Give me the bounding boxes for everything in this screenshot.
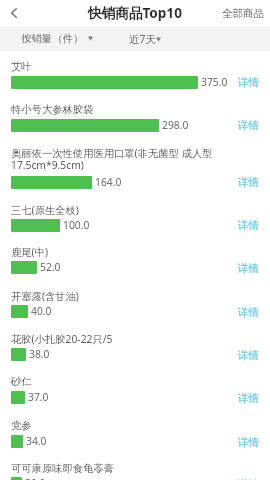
- button[interactable]: Back: [0, 0, 28, 26]
- staticText: 详情: [238, 392, 259, 404]
- staticText: 详情: [238, 349, 259, 361]
- staticText: 三七(原生全枝): [11, 203, 223, 217]
- staticText: 近7天: [129, 32, 156, 46]
- button[interactable]: 详情: [238, 219, 259, 231]
- staticText: 党参: [11, 419, 223, 432]
- button[interactable]: 详情: [238, 119, 259, 131]
- staticText: 详情: [238, 219, 259, 231]
- staticText: 鹿尾(中): [11, 245, 223, 259]
- staticText: 30.0: [25, 476, 46, 480]
- button[interactable]: 详情: [238, 392, 259, 404]
- button[interactable]: 近7天: [129, 32, 161, 46]
- staticText: 298.0: [162, 118, 189, 132]
- button[interactable]: [0, 462, 270, 480]
- staticText: 特小号大参林胶袋: [11, 103, 223, 116]
- staticText: 花胶(小扎胶20-22只/5: [11, 332, 223, 346]
- staticText: 艾叶: [11, 60, 223, 73]
- staticText: 按销量（件）: [21, 32, 84, 45]
- button[interactable]: 详情: [238, 436, 259, 448]
- staticText: 奥丽依一次性使用医用口罩(非无菌型 成人型 17.5cm*9.5cm): [11, 146, 223, 172]
- staticText: 详情: [238, 262, 259, 274]
- button[interactable]: [0, 375, 270, 402]
- staticText: 52.0: [40, 260, 61, 274]
- button[interactable]: 详情: [238, 349, 259, 361]
- staticText: 可可康原味即食龟苓膏: [11, 462, 223, 475]
- staticText: 34.0: [26, 434, 47, 448]
- button[interactable]: [0, 60, 270, 87]
- button[interactable]: [0, 146, 270, 186]
- staticText: 详情: [238, 119, 259, 131]
- button[interactable]: 详情: [238, 176, 259, 188]
- staticText: 详情: [238, 436, 259, 448]
- button[interactable]: 全部商品: [222, 7, 264, 20]
- button[interactable]: 详情: [238, 76, 259, 88]
- staticText: 375.0: [201, 75, 228, 89]
- button[interactable]: 详情: [238, 306, 259, 318]
- button[interactable]: 详情: [238, 262, 259, 274]
- staticText: 详情: [238, 478, 259, 480]
- button[interactable]: [0, 419, 270, 446]
- button[interactable]: [0, 245, 270, 272]
- button[interactable]: 按销量（件）: [21, 32, 93, 45]
- staticText: 164.0: [95, 175, 122, 189]
- staticText: 100.0: [63, 218, 90, 232]
- staticText: 开塞露(含甘油): [11, 289, 223, 303]
- button[interactable]: [0, 203, 270, 230]
- button[interactable]: [0, 289, 270, 316]
- staticText: 快销商品Top10: [88, 3, 182, 22]
- staticText: 37.0: [28, 390, 49, 404]
- staticText: 详情: [238, 176, 259, 188]
- button[interactable]: 详情: [238, 478, 259, 480]
- staticText: 40.0: [31, 304, 52, 318]
- staticText: 砂仁: [11, 375, 223, 388]
- button[interactable]: [0, 103, 270, 130]
- staticText: 详情: [238, 306, 259, 318]
- staticText: 38.0: [29, 347, 50, 361]
- staticText: 详情: [238, 76, 259, 88]
- staticText: 全部商品: [222, 7, 264, 20]
- button[interactable]: [0, 332, 270, 359]
